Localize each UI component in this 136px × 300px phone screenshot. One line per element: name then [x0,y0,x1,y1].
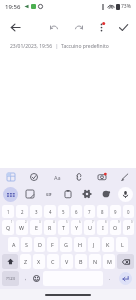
button[interactable]: Table [4,170,18,184]
button[interactable]: Clipboard [61,187,75,201]
button[interactable]: Z [20,254,31,269]
staticText: M [107,258,112,265]
button[interactable]: 4 [44,205,56,218]
button[interactable]: W [16,220,28,235]
button[interactable]: P [123,220,134,235]
button[interactable]: Keyboard [3,187,18,202]
staticText: 3 [39,220,41,224]
button[interactable]: Done [113,17,133,37]
button[interactable]: L [116,237,128,252]
button[interactable]: , [20,270,31,287]
button[interactable]: Checklist [27,170,41,184]
button[interactable]: K [102,237,114,252]
staticText: GIF [46,192,52,197]
staticText: I [102,224,104,231]
staticText: . [109,275,111,282]
staticText: 9 [118,220,120,224]
button[interactable]: 5 [58,205,69,218]
button[interactable]: More options [91,17,111,37]
button[interactable]: B [75,254,87,269]
staticText: Taccuino predefinito [61,43,109,50]
staticText: 5 [62,209,65,215]
button[interactable]: Camera [95,170,109,184]
button[interactable]: I [97,220,108,235]
button[interactable]: 9 [110,205,121,218]
staticText: D [38,241,42,248]
staticText: 4 [53,220,55,224]
button[interactable]: Enter [119,272,132,285]
button[interactable]: X [33,254,45,269]
staticText: 4 [49,209,52,215]
button[interactable]: F [47,237,58,252]
button[interactable]: Attach [72,170,86,184]
button[interactable]: 7 [84,205,95,218]
staticText: T [62,224,65,231]
staticText: Q [6,224,11,231]
staticText: 2 [21,209,24,215]
staticText: 1 [11,220,13,224]
staticText: , [25,275,27,282]
staticText: 8 [101,209,104,215]
button[interactable]: Draw [118,170,132,184]
button[interactable]: 0 [123,205,134,218]
button[interactable]: T [58,220,69,235]
button[interactable]: G [60,237,72,252]
button[interactable]: A [8,237,19,252]
button[interactable]: Q [2,220,14,235]
button[interactable]: GIF [42,187,56,201]
button[interactable]: 6 [71,205,82,218]
staticText: 7 [92,220,94,224]
staticText: V [65,258,69,265]
button[interactable]: O [110,220,121,235]
button[interactable]: 1 [2,205,14,218]
staticText: O [113,224,118,231]
button[interactable]: C [47,254,59,269]
staticText: H [78,241,82,248]
button[interactable]: Voice input [118,187,133,202]
staticText: E [35,224,38,231]
button[interactable]: 8 [97,205,108,218]
button[interactable]: E [30,220,42,235]
button[interactable]: H [74,237,86,252]
button[interactable]: 2 [16,205,28,218]
staticText: 0 [127,209,130,215]
staticText: Z [24,258,28,265]
staticText: 0 [131,220,133,224]
button[interactable]: Y [71,220,82,235]
staticText: A [12,241,16,248]
button[interactable]: Stickers [23,187,37,201]
button[interactable]: Settings [80,187,94,201]
button[interactable]: Undo [44,17,64,37]
button[interactable]: V [61,254,73,269]
staticText: K [106,241,110,248]
staticText: J [93,241,95,248]
staticText: R [48,224,52,231]
button[interactable]: U [84,220,95,235]
button[interactable]: . [104,270,115,287]
staticText: 73% [121,3,131,10]
staticText: B [79,258,83,265]
button[interactable]: Theme [99,187,113,201]
staticText: 3 [35,209,38,215]
button[interactable]: Back [4,16,26,38]
staticText: P [127,224,131,231]
button[interactable]: Emoji [31,270,42,287]
button[interactable]: 3 [30,205,42,218]
staticText: 5 [66,220,68,224]
button[interactable]: Redo [69,17,89,37]
button[interactable]: D [34,237,45,252]
staticText: Y [75,224,79,231]
button[interactable]: ?123 [2,271,19,286]
button[interactable]: J [88,237,100,252]
button[interactable]: N [89,254,101,269]
button[interactable]: R [44,220,56,235]
staticText: 2 [25,220,27,224]
staticText: X [37,258,41,265]
button[interactable]: S [21,237,32,252]
button[interactable]: M [103,254,115,269]
button[interactable]: Text format [50,170,64,184]
staticText: C [51,258,55,265]
button[interactable]: Backspace [117,254,134,269]
button[interactable]: Shift [2,254,18,269]
